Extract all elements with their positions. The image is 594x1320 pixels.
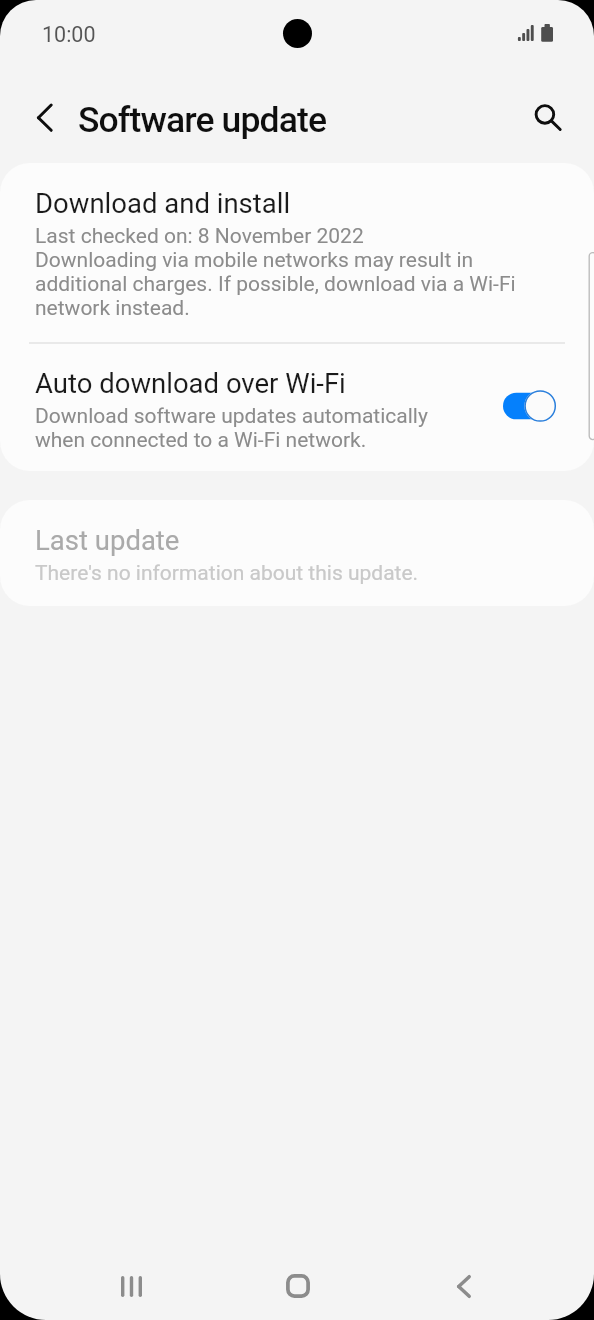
staticText: Last checked on: 8 November 2022 Downloa… xyxy=(35,224,553,320)
button[interactable]: Auto download over Wi-Fi, on xyxy=(501,385,563,427)
staticText: Auto download over Wi-Fi xyxy=(35,367,346,399)
button[interactable]: Recent apps xyxy=(95,1250,167,1320)
staticText: There's no information about this update… xyxy=(35,561,419,586)
staticText: Download software updates automatically … xyxy=(35,404,475,452)
staticText: Download and install xyxy=(35,187,291,219)
button[interactable]: Download and install xyxy=(0,163,594,342)
button[interactable]: Last update xyxy=(0,500,594,606)
button[interactable]: Search xyxy=(516,86,574,144)
staticText: Last update xyxy=(35,524,180,556)
button[interactable]: Auto download over Wi-Fi xyxy=(0,344,594,471)
button[interactable]: Home xyxy=(262,1250,334,1320)
button[interactable]: Back xyxy=(428,1250,500,1320)
staticText: Software update xyxy=(78,99,327,141)
staticText: 10:00 xyxy=(42,22,96,47)
button[interactable]: Navigate up xyxy=(16,89,74,147)
